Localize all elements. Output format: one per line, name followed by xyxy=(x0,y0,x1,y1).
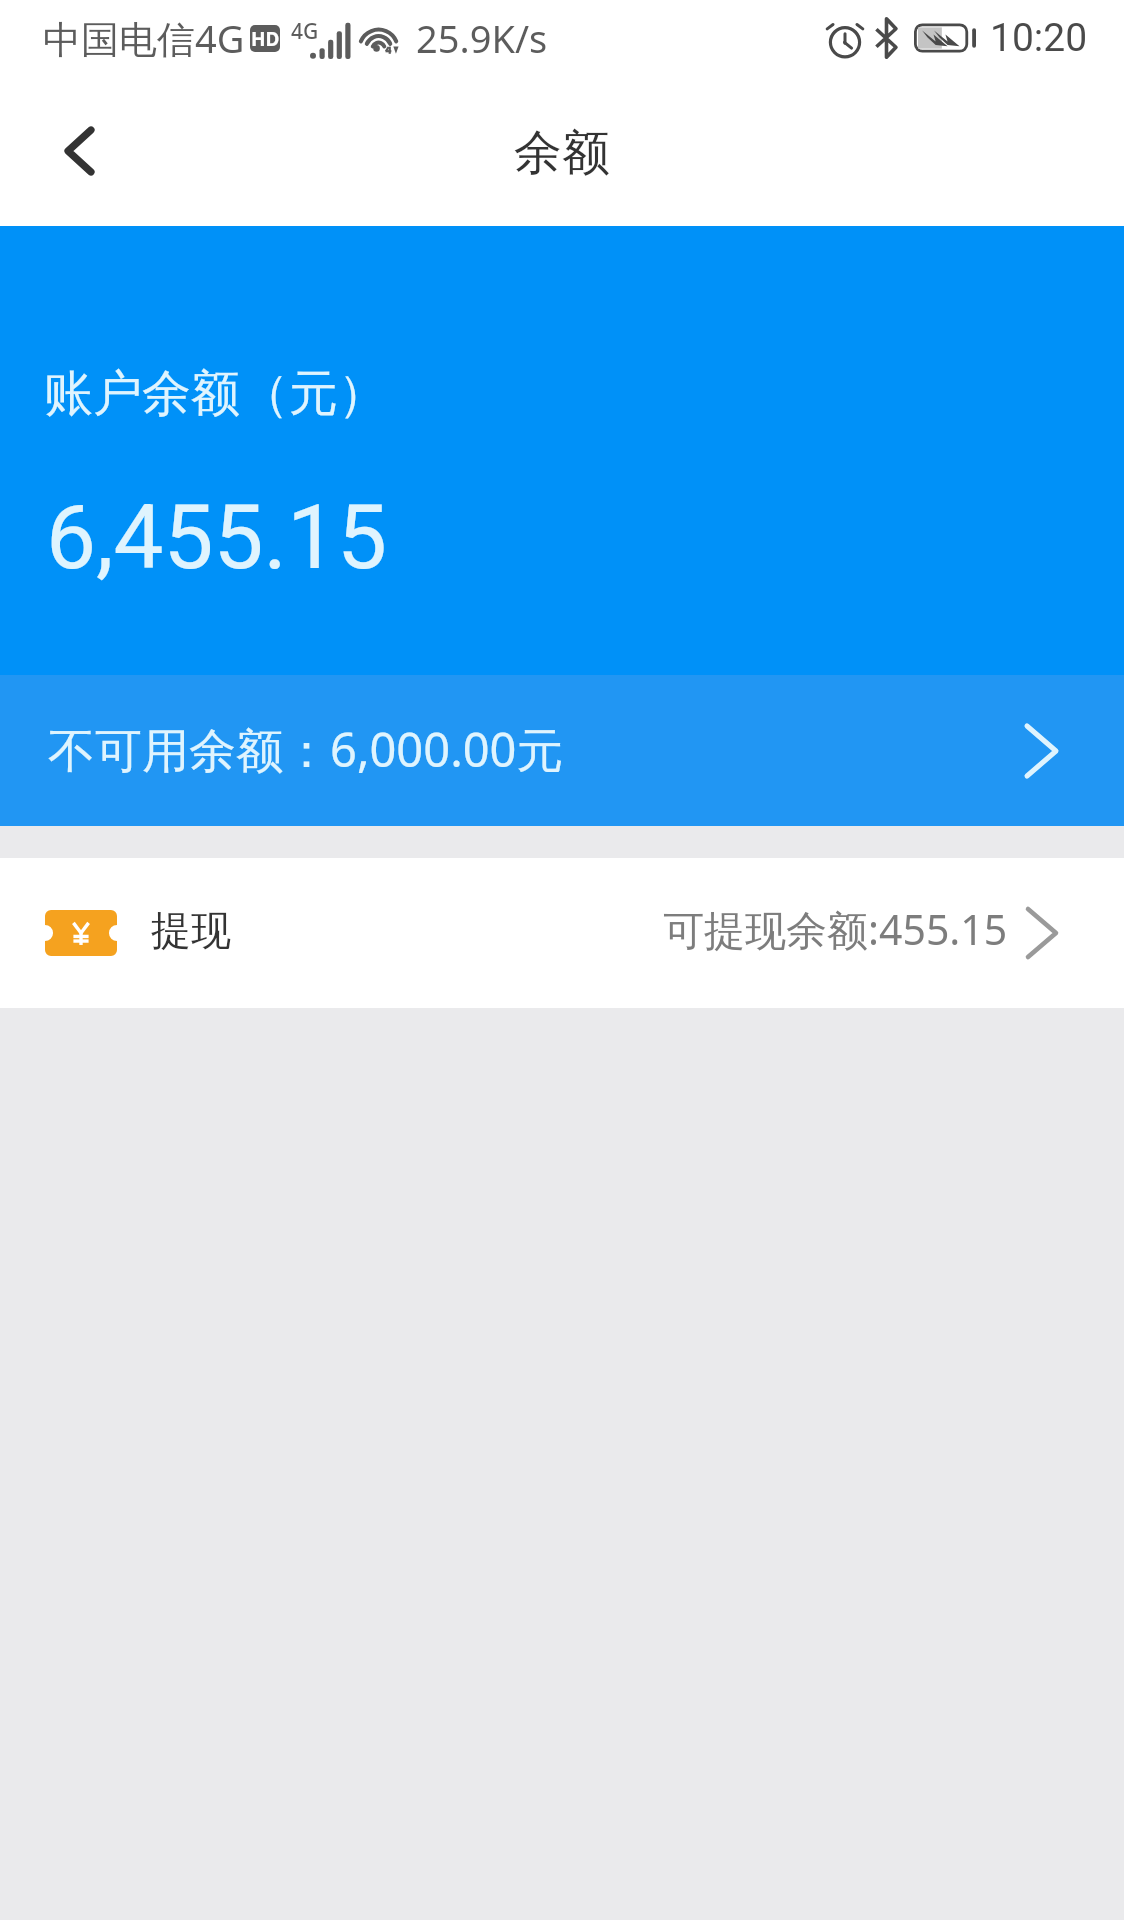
staticText: 6,455.15 xyxy=(46,485,388,589)
staticText: 25.9K/s xyxy=(416,12,548,64)
staticText: 中国电信4G xyxy=(43,12,245,64)
staticText: 不可用余额：6,000.00元 xyxy=(48,717,564,781)
button[interactable]: 不可用余额：6,000.00元 xyxy=(0,675,1124,826)
staticText: HD xyxy=(251,26,280,52)
staticText: 提现 xyxy=(151,905,231,955)
staticText: 余额 xyxy=(514,123,610,183)
button[interactable]: 提现 xyxy=(0,858,1124,1008)
staticText: 可提现余额:455.15 xyxy=(663,901,1008,957)
staticText: 10:20 xyxy=(990,15,1088,61)
staticText: 4G xyxy=(291,17,319,46)
staticText: 账户余额（元） xyxy=(44,363,387,425)
button[interactable]: Back xyxy=(0,86,158,226)
